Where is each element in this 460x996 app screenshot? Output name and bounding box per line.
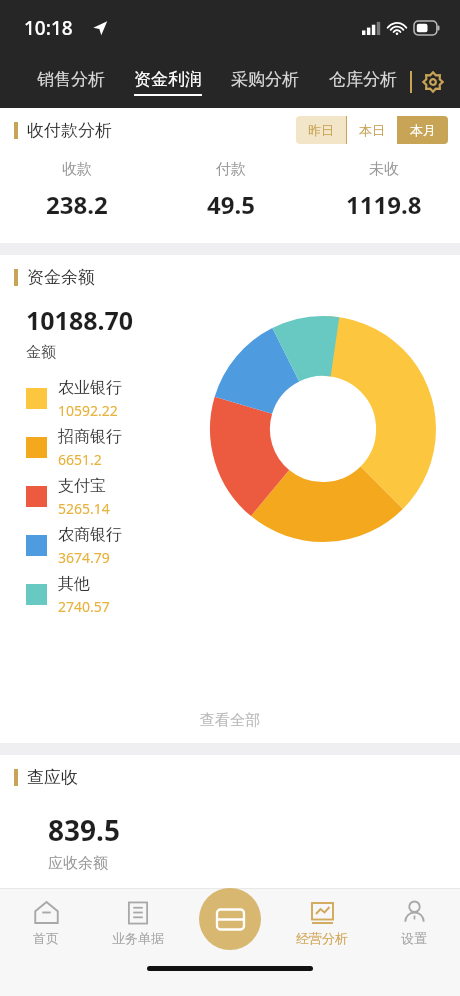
staticText: 6651.2: [58, 450, 102, 469]
staticText: 金额: [26, 343, 56, 362]
button[interactable]: 设置: [368, 889, 460, 957]
button[interactable]: Settings: [418, 67, 448, 97]
staticText: 查应收: [27, 767, 78, 788]
button[interactable]: 采购分析: [216, 56, 314, 108]
button[interactable]: 仓库分析: [314, 56, 412, 108]
staticText: No.1: [19, 900, 48, 918]
staticText: 昨日: [308, 122, 334, 138]
button[interactable]: 首页: [0, 889, 92, 957]
button[interactable]: 查看全部: [0, 697, 460, 743]
staticText: 10188.70: [26, 303, 134, 337]
staticText: 仓库分析: [329, 69, 397, 90]
staticText: 10592.22: [58, 401, 118, 420]
staticText: 其他: [58, 574, 90, 594]
staticText: 2740.57: [58, 597, 110, 616]
staticText: 本月: [410, 122, 436, 138]
button[interactable]: 经营分析: [276, 889, 368, 957]
staticText: 收款: [62, 160, 92, 179]
staticText: 资金利润: [134, 69, 202, 90]
staticText: 业务单据: [112, 930, 164, 946]
button[interactable]: 业务单据: [92, 889, 184, 957]
staticText: 设置: [401, 930, 427, 946]
button[interactable]: 本月: [398, 116, 448, 144]
button[interactable]: No.1: [14, 891, 446, 925]
staticText: 5265.14: [58, 499, 110, 518]
button[interactable]: 昨日: [296, 116, 346, 144]
staticText: 3674.79: [58, 548, 110, 567]
button[interactable]: Add document: [199, 888, 261, 950]
staticText: 10:18: [24, 15, 73, 41]
staticText: 经营分析: [296, 930, 348, 946]
staticText: 农商银行: [58, 525, 122, 545]
button[interactable]: 资金利润: [119, 56, 216, 108]
staticText: 首页: [33, 930, 59, 946]
staticText: ￥358.5: [389, 897, 446, 919]
staticText: 付款: [216, 160, 246, 179]
staticText: 238.2: [46, 188, 108, 221]
staticText: 收付款分析: [27, 120, 112, 141]
staticText: 支付宝: [58, 476, 106, 496]
staticText: 本日: [359, 122, 385, 138]
staticText: 应收余额: [48, 854, 108, 873]
staticText: 销售分析: [37, 69, 105, 90]
button[interactable]: 本日: [347, 116, 397, 144]
staticText: 资金余额: [27, 267, 95, 288]
staticText: 采购分析: [231, 69, 299, 90]
staticText: 招商银行: [58, 427, 122, 447]
staticText: 未收: [369, 160, 399, 179]
staticText: 839.5: [48, 811, 120, 849]
staticText: 49.5: [207, 188, 255, 221]
button[interactable]: 销售分析: [22, 56, 119, 108]
staticText: 农业银行: [58, 378, 122, 398]
staticText: 查看全部: [200, 711, 260, 730]
staticText: 1119.8: [346, 188, 422, 221]
